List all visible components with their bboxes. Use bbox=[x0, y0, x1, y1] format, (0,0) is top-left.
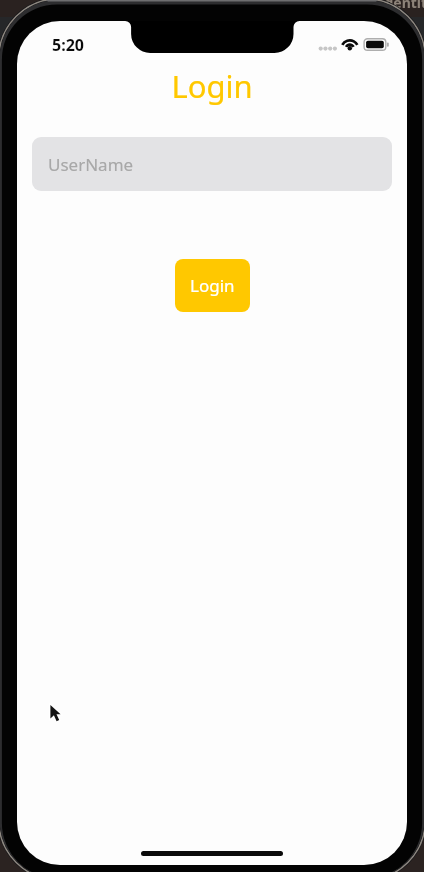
button[interactable]: Login bbox=[175, 259, 250, 312]
button[interactable]: UserName bbox=[32, 137, 392, 191]
staticText: Login bbox=[17, 65, 407, 107]
staticText: Identity bbox=[379, 0, 424, 12]
staticText: Login bbox=[190, 274, 235, 297]
staticText: 5:20 bbox=[52, 34, 84, 56]
staticText: UserName bbox=[48, 153, 134, 176]
